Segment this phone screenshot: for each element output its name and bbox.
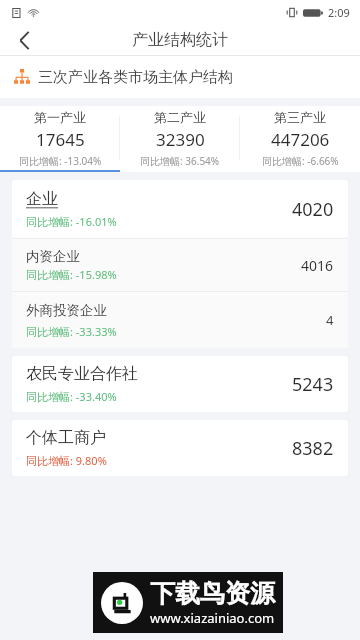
staticText: 第三产业 — [274, 109, 326, 125]
staticText: 同比增幅: -33.33% — [26, 324, 117, 339]
staticText: 5243 — [292, 372, 334, 397]
staticText: 32390 — [156, 128, 205, 151]
staticText: 4020 — [292, 197, 334, 222]
staticText: 第二产业 — [154, 109, 206, 125]
staticText: 企业 — [26, 189, 58, 209]
staticText: 下载鸟资源 — [150, 578, 275, 609]
staticText: 同比增幅: 9.80% — [26, 453, 107, 468]
staticText: 同比增幅: -13.04% — [19, 154, 102, 168]
staticText: 个体工商户 — [26, 428, 106, 448]
button[interactable]: Back — [0, 24, 48, 56]
button[interactable]: 第三产业 — [240, 106, 360, 170]
staticText: 4016 — [301, 256, 334, 275]
staticText: 同比增幅: -16.01% — [26, 214, 117, 229]
button[interactable]: 第一产业 — [0, 106, 120, 170]
staticText: 17645 — [36, 128, 85, 151]
staticText: 2:09 — [328, 5, 350, 20]
staticText: 447206 — [271, 128, 330, 151]
button[interactable]: 第二产业 — [120, 106, 240, 170]
button[interactable]: 内资企业 — [12, 239, 348, 291]
staticText: 第一产业 — [34, 109, 86, 125]
staticText: 三次产业各类市场主体户结构 — [38, 68, 233, 87]
staticText: 同比增幅: -33.40% — [26, 389, 117, 404]
button[interactable]: 个体工商户 — [12, 420, 348, 476]
staticText: www.xiazainiao.com — [150, 609, 275, 627]
staticText: 产业结构统计 — [132, 30, 228, 50]
staticText: 外商投资企业 — [26, 302, 107, 319]
staticText: 同比增幅: 36.54% — [140, 154, 220, 168]
button[interactable]: 企业 — [12, 180, 348, 238]
staticText: 内资企业 — [26, 248, 80, 265]
button[interactable]: 外商投资企业 — [12, 292, 348, 348]
staticText: 农民专业合作社 — [26, 364, 138, 384]
button[interactable]: 农民专业合作社 — [12, 356, 348, 412]
staticText: 同比增幅: -15.98% — [26, 267, 117, 282]
staticText: 8382 — [292, 436, 334, 461]
staticText: 4 — [326, 311, 334, 329]
staticText: 同比增幅: -6.66% — [262, 154, 339, 168]
